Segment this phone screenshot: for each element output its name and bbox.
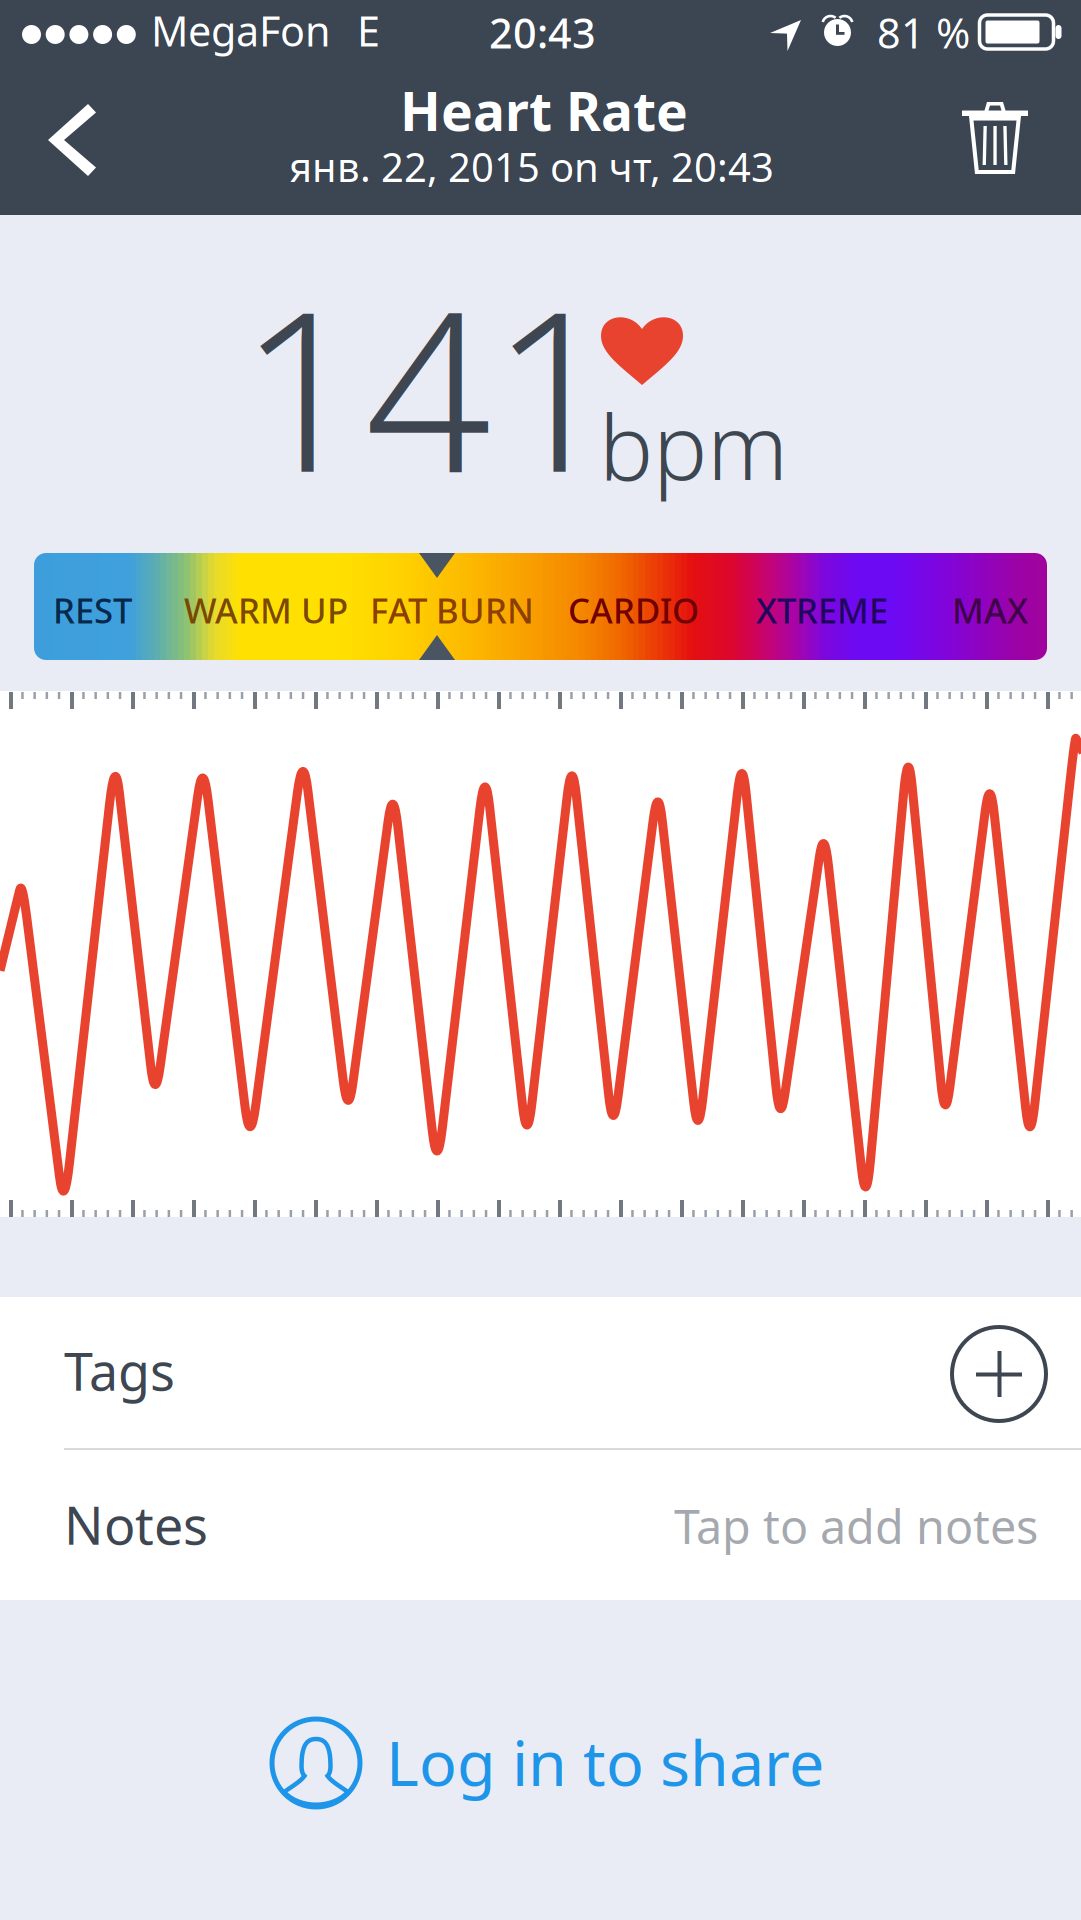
- staticText: 81 %: [877, 5, 970, 60]
- staticText: bpm: [599, 385, 788, 505]
- staticText: REST: [53, 587, 132, 633]
- button[interactable]: Tags: [0, 1297, 1081, 1448]
- staticText: Notes: [64, 1490, 208, 1559]
- button[interactable]: Back: [0, 71, 146, 208]
- staticText: E: [357, 3, 380, 58]
- staticText: WARM UP: [184, 587, 348, 633]
- button[interactable]: Delete: [938, 71, 1081, 208]
- staticText: CARDIO: [568, 587, 699, 633]
- staticText: Tags: [64, 1336, 175, 1405]
- staticText: 20:43: [489, 5, 596, 60]
- staticText: 141: [239, 239, 617, 533]
- staticText: XTREME: [756, 587, 888, 633]
- staticText: MAX: [952, 587, 1028, 633]
- button[interactable]: Notes: [0, 1450, 1081, 1595]
- staticText: MegaFon: [151, 3, 331, 58]
- staticText: Tap to add notes: [674, 1495, 1038, 1557]
- staticText: FAT BURN: [370, 587, 534, 633]
- staticText: Heart Rate: [400, 75, 688, 146]
- staticText: янв. 22, 2015 on чт, 20:43: [289, 140, 774, 193]
- staticText: Log in to share: [386, 1720, 824, 1803]
- button[interactable]: Log in to share: [272, 1699, 832, 1827]
